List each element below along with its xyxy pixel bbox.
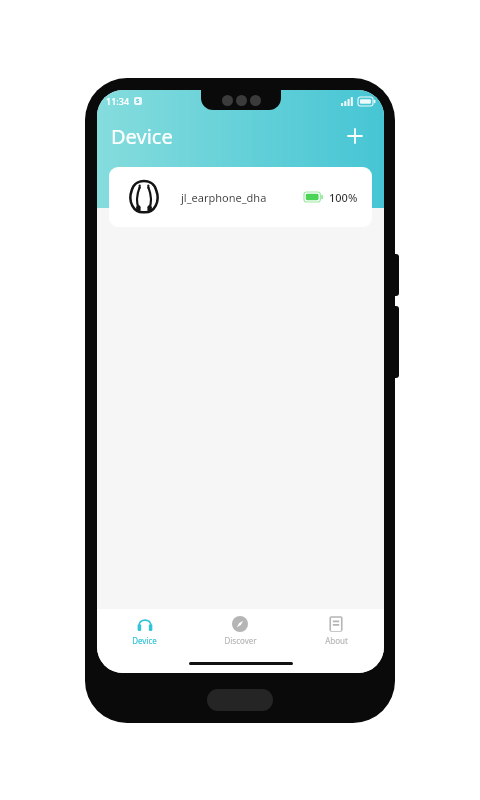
staticText: Discover [224, 635, 257, 646]
staticText: About [325, 635, 348, 646]
staticText: 11:34 [106, 95, 130, 107]
button[interactable]: Device [97, 609, 192, 653]
staticText: jl_earphone_dha [181, 190, 267, 205]
button[interactable]: About [288, 609, 384, 653]
button[interactable]: Add device [340, 121, 370, 151]
staticText: 100% [329, 190, 358, 205]
staticText: S [136, 97, 140, 105]
button[interactable]: jl_earphone_dha [109, 167, 372, 227]
staticText: Device [132, 635, 157, 646]
button[interactable]: Discover [192, 609, 288, 653]
staticText: Device [111, 123, 173, 150]
